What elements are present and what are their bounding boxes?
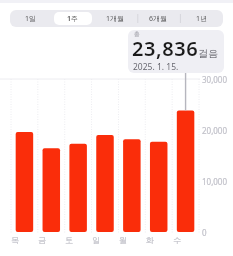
button[interactable]: 1일: [12, 12, 50, 25]
staticText: 1일: [25, 14, 37, 24]
staticText: 화: [146, 235, 154, 245]
staticText: 금: [38, 235, 46, 245]
button[interactable]: 6개월: [139, 12, 178, 25]
button[interactable]: 1개월: [96, 12, 135, 25]
staticText: 10,000: [202, 176, 228, 187]
staticText: 2025. 1. 15.: [133, 61, 179, 73]
button[interactable]: 1년: [182, 12, 221, 25]
staticText: 20,000: [202, 125, 228, 136]
staticText: 수: [173, 235, 181, 245]
staticText: 30,000: [202, 74, 228, 85]
staticText: 목: [11, 235, 19, 245]
button[interactable]: 1주: [54, 12, 92, 25]
staticText: 1주: [67, 14, 79, 24]
staticText: 월: [119, 235, 127, 245]
staticText: 총: [134, 30, 140, 38]
staticText: 23,836: [132, 35, 199, 62]
staticText: 걸음: [198, 47, 218, 60]
staticText: 일: [92, 235, 100, 245]
staticText: 1년: [196, 14, 208, 24]
button[interactable]: 총: [128, 30, 224, 73]
staticText: 토: [65, 235, 73, 245]
staticText: 0: [202, 227, 207, 238]
staticText: 1개월: [106, 14, 125, 24]
staticText: 6개월: [149, 14, 168, 24]
